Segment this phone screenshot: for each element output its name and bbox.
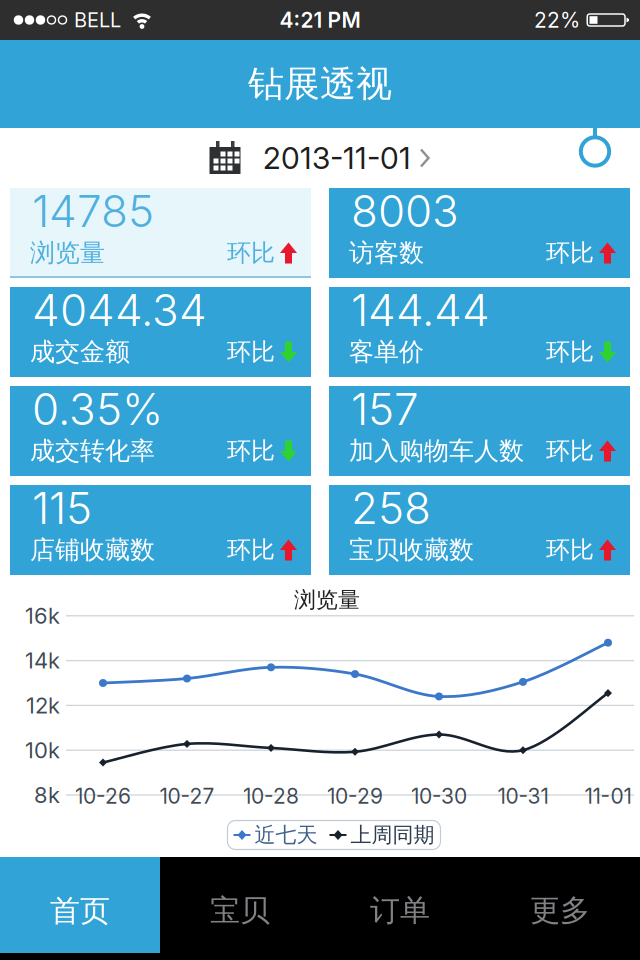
button[interactable]: 订单 bbox=[320, 857, 480, 952]
staticText: 环比 bbox=[546, 436, 594, 466]
button[interactable]: 4044.34 bbox=[10, 287, 311, 377]
staticText: 16k bbox=[25, 602, 60, 629]
staticText: 钻展透视 bbox=[248, 61, 392, 107]
staticText: 8k bbox=[34, 782, 60, 808]
staticText: 22% bbox=[534, 7, 580, 33]
staticText: 成交转化率 bbox=[30, 435, 155, 467]
staticText: 浏览量 bbox=[30, 237, 105, 269]
staticText: 14k bbox=[25, 647, 60, 674]
staticText: 258 bbox=[351, 481, 431, 535]
staticText: 2013-11-01 bbox=[263, 140, 411, 176]
staticText: 环比 bbox=[546, 337, 594, 367]
staticText: 店铺收藏数 bbox=[30, 534, 155, 566]
button[interactable]: 258 bbox=[329, 485, 630, 575]
staticText: 环比 bbox=[546, 238, 594, 268]
staticText: 浏览量 bbox=[294, 586, 360, 614]
staticText: 10-29 bbox=[327, 783, 383, 809]
staticText: 宝贝收藏数 bbox=[349, 534, 474, 566]
staticText: BELL bbox=[74, 8, 121, 32]
button[interactable]: 8003 bbox=[329, 188, 630, 278]
staticText: 157 bbox=[351, 382, 419, 436]
staticText: 4:21 PM bbox=[279, 7, 360, 33]
staticText: 加入购物车人数 bbox=[349, 435, 524, 467]
staticText: 成交金额 bbox=[30, 336, 130, 368]
staticText: 10-28 bbox=[243, 783, 299, 809]
staticText: 144.44 bbox=[351, 283, 490, 337]
staticText: 10-31 bbox=[497, 783, 548, 809]
staticText: 环比 bbox=[227, 535, 275, 565]
button[interactable]: 144.44 bbox=[329, 287, 630, 377]
button[interactable]: 14785 bbox=[10, 188, 311, 278]
staticText: 115 bbox=[32, 481, 92, 535]
staticText: 更多 bbox=[530, 892, 590, 929]
staticText: 环比 bbox=[546, 535, 594, 565]
staticText: 上周同期 bbox=[350, 822, 434, 848]
staticText: 10-26 bbox=[75, 783, 131, 809]
button[interactable]: 0.35% bbox=[10, 386, 311, 476]
staticText: 10-27 bbox=[159, 783, 214, 809]
staticText: 10-30 bbox=[411, 783, 467, 809]
button[interactable]: 宝贝 bbox=[160, 857, 320, 952]
staticText: 访客数 bbox=[349, 237, 424, 269]
staticText: 8003 bbox=[351, 184, 459, 238]
staticText: 订单 bbox=[370, 892, 430, 929]
staticText: 首页 bbox=[50, 892, 110, 930]
button[interactable]: 首页 bbox=[0, 857, 160, 953]
staticText: 近七天 bbox=[254, 822, 317, 848]
button[interactable]: 更多 bbox=[480, 857, 640, 952]
button[interactable]: 2013-11-01 bbox=[209, 140, 431, 176]
staticText: 10k bbox=[25, 737, 60, 763]
staticText: 环比 bbox=[227, 436, 275, 466]
staticText: 环比 bbox=[227, 238, 275, 268]
staticText: 14785 bbox=[32, 184, 154, 238]
staticText: 客单价 bbox=[349, 336, 424, 368]
staticText: 宝贝 bbox=[210, 892, 270, 929]
staticText: 0.35% bbox=[32, 382, 163, 436]
button[interactable]: 115 bbox=[10, 485, 311, 575]
button[interactable]: 157 bbox=[329, 386, 630, 476]
staticText: 4044.34 bbox=[32, 283, 207, 337]
button[interactable]: 近七天 bbox=[227, 820, 440, 849]
staticText: 11-01 bbox=[584, 783, 631, 809]
staticText: 环比 bbox=[227, 337, 275, 367]
staticText: 12k bbox=[26, 692, 60, 719]
